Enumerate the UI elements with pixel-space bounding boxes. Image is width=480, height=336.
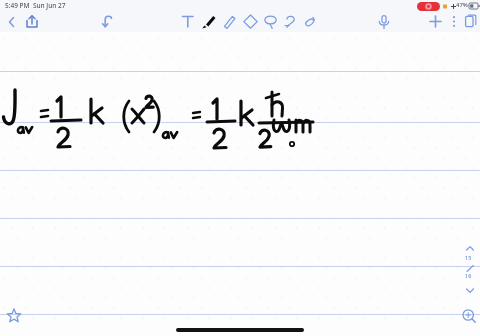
button[interactable]: Eraser [241, 12, 260, 31]
button[interactable]: Pencil [220, 12, 238, 31]
button[interactable]: Bookmark [4, 306, 24, 326]
staticText: 47% [456, 1, 468, 9]
staticText: 16 [465, 272, 472, 279]
button[interactable]: Undo [99, 13, 117, 31]
button[interactable]: More options [448, 13, 460, 30]
button[interactable]: Marker [200, 12, 218, 31]
button[interactable]: Screen recording [417, 2, 440, 11]
staticText: 15 [465, 254, 472, 261]
button[interactable]: Page 15 of 16 [461, 244, 480, 296]
button[interactable]: Lasso select [261, 12, 280, 31]
button[interactable]: Attach [301, 12, 320, 31]
button[interactable]: Back [4, 14, 20, 30]
staticText: 5:49 PM Sun Jun 27 [5, 1, 66, 10]
button[interactable]: Text tool [180, 13, 196, 30]
button[interactable]: Add [427, 13, 444, 30]
button[interactable]: Share [23, 13, 41, 31]
button[interactable]: Zoom [459, 306, 480, 326]
button[interactable]: Shapes [281, 12, 300, 31]
button[interactable]: Pages [463, 13, 479, 30]
button[interactable]: Microphone [376, 13, 392, 31]
